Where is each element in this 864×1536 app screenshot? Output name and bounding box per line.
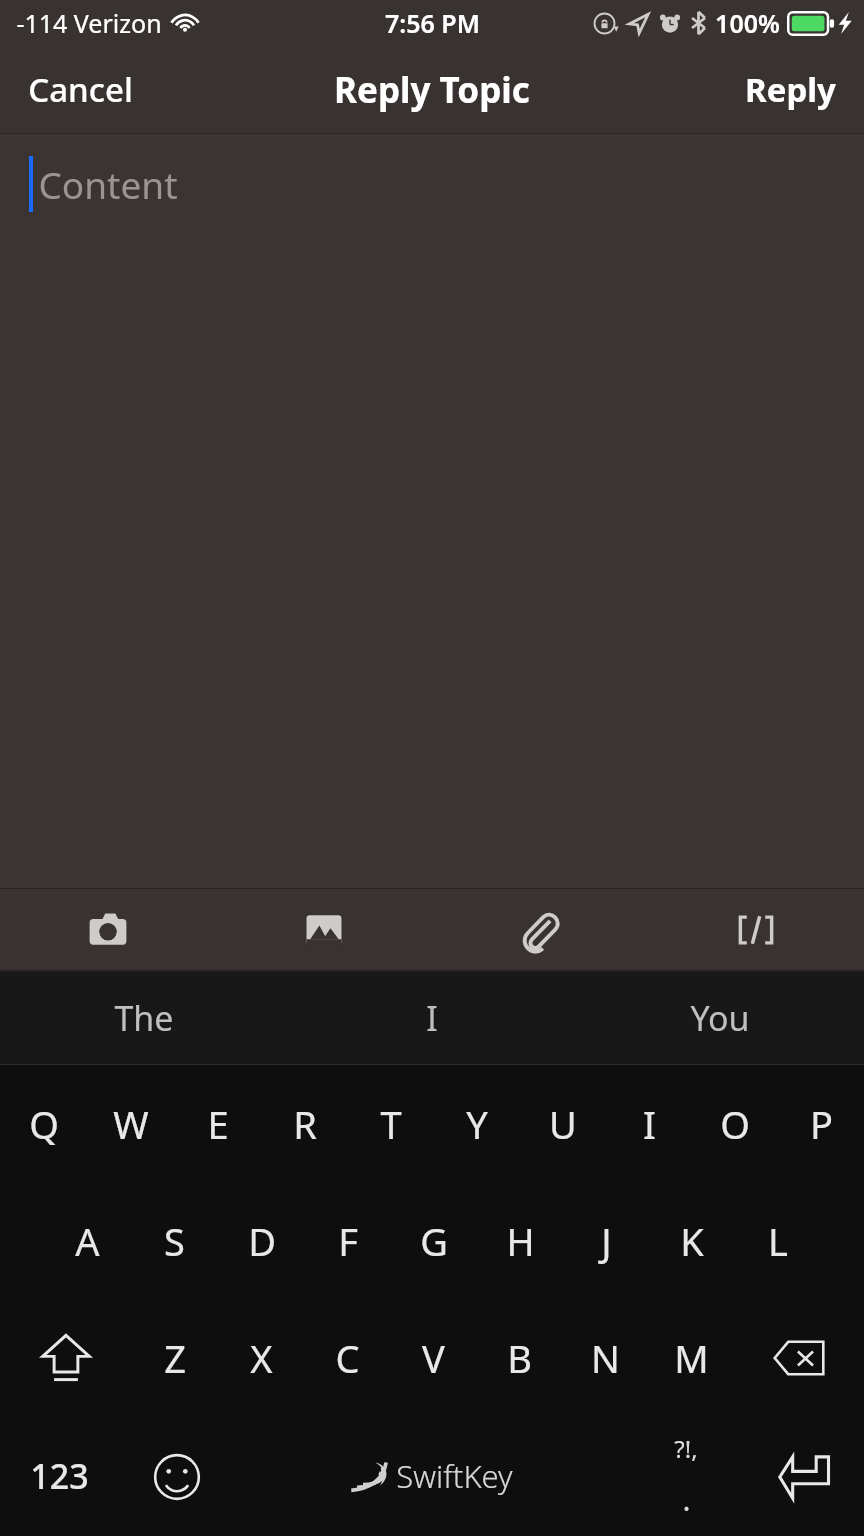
- button[interactable]: Q: [0, 1065, 87, 1182]
- staticText: Y: [466, 1098, 488, 1150]
- staticText: ?!,: [674, 1432, 698, 1465]
- button[interactable]: N: [562, 1299, 648, 1416]
- button[interactable]: Enter: [745, 1418, 864, 1535]
- staticText: G: [420, 1215, 448, 1267]
- button[interactable]: O: [692, 1065, 778, 1182]
- staticText: -114 Verizon: [16, 6, 162, 40]
- button[interactable]: M: [648, 1299, 734, 1416]
- staticText: 123: [30, 1453, 89, 1499]
- button[interactable]: X: [218, 1299, 304, 1416]
- staticText: P: [810, 1098, 833, 1150]
- staticText: N: [591, 1332, 620, 1384]
- button[interactable]: L: [735, 1182, 821, 1299]
- staticText: X: [250, 1332, 273, 1384]
- staticText: B: [507, 1332, 532, 1384]
- staticText: U: [549, 1098, 577, 1150]
- button[interactable]: D: [218, 1182, 305, 1299]
- button[interactable]: Space: [236, 1416, 626, 1536]
- button[interactable]: I: [606, 1065, 692, 1182]
- staticText: D: [248, 1215, 276, 1267]
- staticText: I: [643, 1098, 656, 1150]
- button[interactable]: F: [305, 1182, 391, 1299]
- staticText: You: [690, 995, 750, 1041]
- staticText: V: [422, 1332, 445, 1384]
- staticText: Cancel: [28, 67, 133, 112]
- button[interactable]: Cancel: [0, 53, 161, 126]
- button[interactable]: Attach file: [432, 889, 648, 970]
- button[interactable]: U: [520, 1065, 606, 1182]
- button[interactable]: J: [563, 1182, 649, 1299]
- staticText: Reply: [745, 67, 836, 112]
- button[interactable]: Punctuation: [626, 1416, 745, 1536]
- button[interactable]: Reply: [717, 53, 864, 126]
- button[interactable]: W: [87, 1065, 174, 1182]
- button[interactable]: B: [476, 1299, 562, 1416]
- button[interactable]: S: [131, 1182, 218, 1299]
- staticText: W: [113, 1098, 149, 1150]
- button[interactable]: Take photo: [0, 889, 216, 970]
- button[interactable]: G: [391, 1182, 477, 1299]
- button[interactable]: H: [477, 1182, 563, 1299]
- button[interactable]: Content: [0, 134, 864, 888]
- staticText: .: [682, 1479, 691, 1520]
- button[interactable]: A: [44, 1182, 131, 1299]
- button[interactable]: T: [348, 1065, 434, 1182]
- staticText: Content: [38, 159, 178, 209]
- button[interactable]: R: [261, 1065, 348, 1182]
- staticText: H: [506, 1215, 535, 1267]
- staticText: K: [680, 1215, 704, 1267]
- staticText: 100%: [715, 6, 780, 40]
- staticText: J: [601, 1215, 612, 1267]
- staticText: The: [114, 995, 174, 1041]
- button[interactable]: 123: [0, 1416, 118, 1536]
- staticText: Z: [164, 1332, 186, 1384]
- button[interactable]: K: [649, 1182, 735, 1299]
- staticText: O: [720, 1098, 750, 1150]
- staticText: SwiftKey: [396, 1455, 513, 1497]
- staticText: R: [293, 1098, 317, 1150]
- staticText: F: [338, 1215, 358, 1267]
- button[interactable]: Emoji: [118, 1418, 236, 1535]
- button[interactable]: Y: [434, 1065, 520, 1182]
- staticText: 7:56 PM: [385, 6, 480, 40]
- button[interactable]: Z: [131, 1299, 218, 1416]
- button[interactable]: Shift: [0, 1299, 131, 1416]
- staticText: Q: [29, 1098, 59, 1150]
- button[interactable]: You: [576, 972, 864, 1064]
- button[interactable]: E: [174, 1065, 261, 1182]
- button[interactable]: Backspace: [734, 1299, 864, 1416]
- button[interactable]: The: [0, 972, 288, 1064]
- staticText: E: [207, 1098, 229, 1150]
- staticText: T: [380, 1098, 402, 1150]
- button[interactable]: I: [288, 972, 576, 1064]
- button[interactable]: P: [778, 1065, 864, 1182]
- staticText: L: [768, 1215, 788, 1267]
- button[interactable]: C: [304, 1299, 390, 1416]
- staticText: Reply Topic: [334, 66, 530, 114]
- staticText: A: [75, 1215, 100, 1267]
- staticText: M: [674, 1332, 709, 1384]
- staticText: I: [426, 995, 438, 1041]
- staticText: S: [164, 1215, 185, 1267]
- button[interactable]: Insert image: [216, 889, 432, 970]
- staticText: C: [335, 1332, 360, 1384]
- button[interactable]: Insert code: [648, 889, 864, 970]
- button[interactable]: V: [390, 1299, 476, 1416]
